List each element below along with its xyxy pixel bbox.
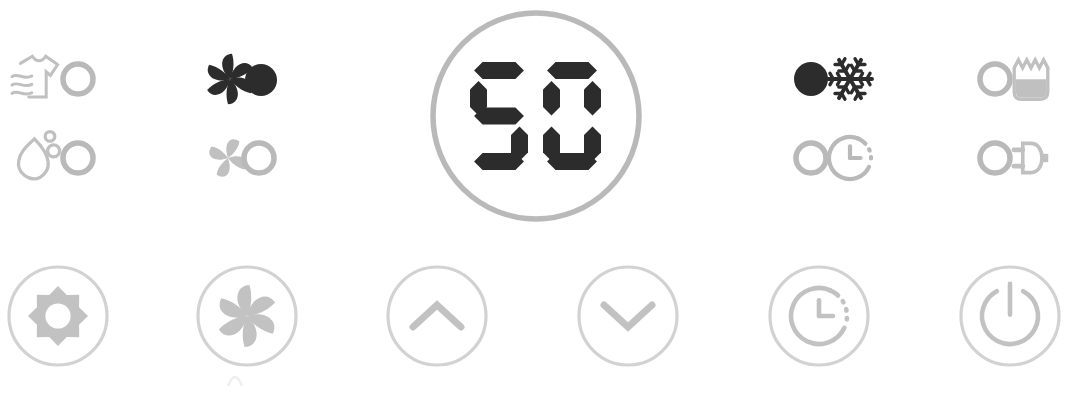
button[interactable]: Increase (387, 266, 487, 366)
button[interactable]: Decrease (578, 266, 678, 366)
button[interactable]: Humidity level 50 (432, 12, 640, 220)
button[interactable]: Cool mode indicator (786, 50, 882, 108)
button[interactable]: Fan mode indicator (196, 50, 292, 108)
button[interactable]: Water tank full indicator (976, 50, 1066, 108)
button[interactable]: Fan speed (197, 266, 297, 366)
button[interactable]: Humidity mode indicator (6, 130, 106, 188)
button[interactable]: Power (960, 266, 1060, 366)
button[interactable]: Swing mode indicator (196, 130, 292, 188)
button[interactable]: Dry clothes mode indicator (6, 50, 106, 108)
button[interactable]: Power plug indicator (976, 130, 1066, 188)
button[interactable]: Timer (769, 266, 869, 366)
button[interactable]: Timer indicator (786, 130, 882, 188)
button[interactable]: Settings (8, 266, 108, 366)
